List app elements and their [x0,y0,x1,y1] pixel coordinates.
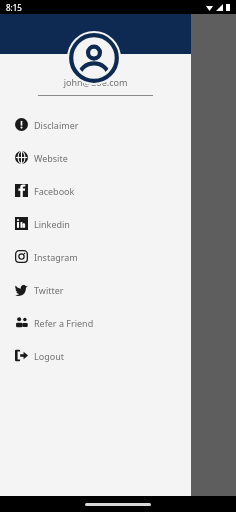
button[interactable]: Disclaimer [0,108,191,141]
button[interactable]: Website [0,141,191,174]
staticText: Facebook [34,185,75,197]
button[interactable]: Logout [0,339,191,372]
staticText: John Doe [0,62,191,74]
staticText: Website [34,152,68,164]
staticText: Logout [34,350,64,362]
staticText: 8:15 [6,2,22,13]
button[interactable]: Refer a Friend [0,306,191,339]
staticText: Disclaimer [34,119,79,131]
staticText: Linkedin [34,218,70,230]
staticText: john@doe.com [0,76,191,88]
button[interactable]: Instagram [0,240,191,273]
button[interactable]: Account [198,12,228,42]
button[interactable]: Linkedin [0,207,191,240]
staticText: Twitter [34,284,64,296]
button[interactable]: Twitter [0,273,191,306]
button[interactable]: Facebook [0,174,191,207]
staticText: Refer a Friend [34,317,94,329]
staticText: Instagram [34,251,78,263]
